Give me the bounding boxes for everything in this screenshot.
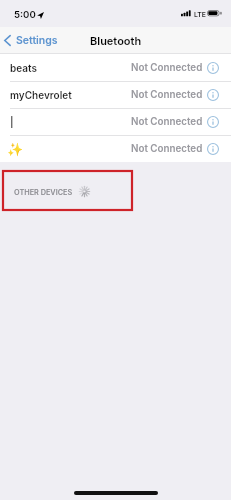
button[interactable]: More info about | [207,116,219,128]
button[interactable]: myChevrolet [0,81,231,108]
button[interactable]: Settings [0,30,64,51]
button[interactable]: | [0,108,231,135]
staticText: | [10,116,14,128]
staticText: LTE [194,10,206,18]
staticText: Not Connected [131,116,203,128]
staticText: Not Connected [131,143,203,155]
staticText: Not Connected [131,62,203,74]
button[interactable]: More info about beats [207,62,219,74]
staticText: Not Connected [131,89,203,101]
button[interactable]: ✨ [0,135,231,162]
staticText: ✨ [7,142,24,157]
staticText: beats [10,62,37,74]
staticText: OTHER DEVICES [14,188,73,197]
staticText: Bluetooth [90,34,142,47]
staticText: myChevrolet [10,89,72,101]
button[interactable]: More info about myChevrolet [207,89,219,101]
staticText: Settings [16,34,58,47]
button[interactable]: beats [0,54,231,81]
staticText: 5:00 [14,9,36,21]
button[interactable]: More info about ✨ [207,143,219,155]
